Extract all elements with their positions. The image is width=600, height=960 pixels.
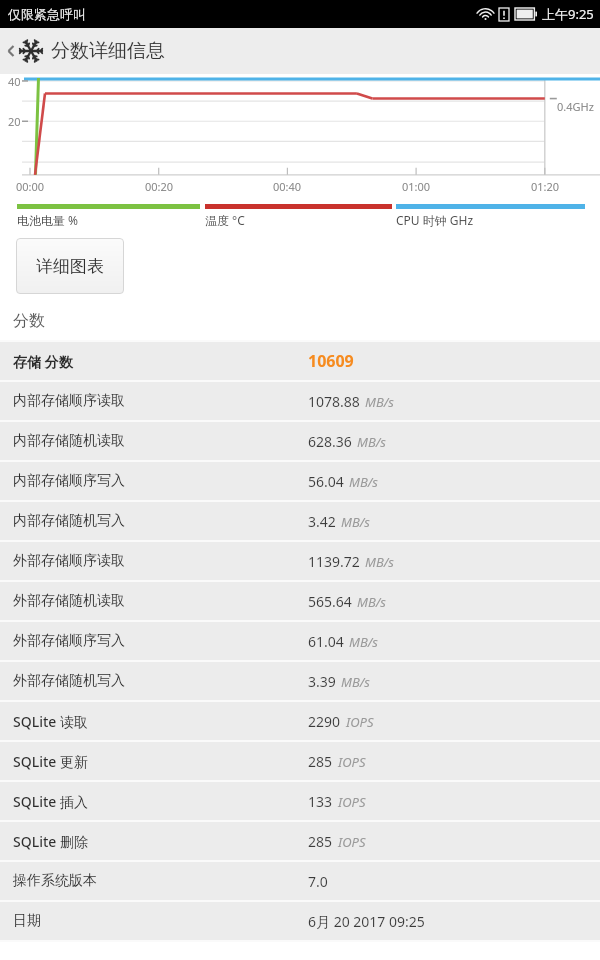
staticText: 61.04: [308, 632, 344, 651]
staticText: 1078.88: [308, 392, 360, 411]
staticText: MB/s: [349, 633, 378, 651]
button[interactable]: 外部存储顺序读取: [0, 542, 600, 580]
staticText: MB/s: [341, 513, 370, 531]
button[interactable]: 外部存储随机读取: [0, 582, 600, 620]
staticText: 分数: [13, 311, 45, 331]
button[interactable]: SQLite 插入: [0, 782, 600, 820]
staticText: 外部存储随机写入: [13, 672, 308, 690]
button[interactable]: SQLite 更新: [0, 742, 600, 780]
button[interactable]: 内部存储顺序写入: [0, 462, 600, 500]
staticText: 56.04: [308, 472, 344, 491]
staticText: 00:20: [141, 179, 177, 194]
staticText: 详细图表: [36, 256, 104, 277]
staticText: IOPS: [338, 833, 366, 851]
staticText: CPU 时钟 GHz: [396, 212, 474, 228]
button[interactable]: 存储 分数: [0, 342, 600, 380]
staticText: 外部存储顺序写入: [13, 632, 308, 650]
staticText: 01:20: [527, 179, 563, 194]
staticText: 外部存储随机读取: [13, 592, 308, 610]
staticText: 存储 分数: [13, 352, 308, 371]
staticText: MB/s: [357, 433, 386, 451]
staticText: 6月 20 2017 09:25: [308, 912, 425, 931]
staticText: SQLite 读取: [13, 712, 308, 731]
button[interactable]: 操作系统版本: [0, 862, 600, 900]
staticText: 285: [308, 832, 333, 851]
staticText: 40: [8, 74, 21, 89]
staticText: 操作系统版本: [13, 872, 308, 890]
button[interactable]: 日期: [0, 902, 600, 940]
staticText: 2290: [308, 712, 341, 731]
staticText: 日期: [13, 912, 308, 930]
staticText: 20: [8, 114, 21, 129]
staticText: 7.0: [308, 872, 328, 891]
button[interactable]: Back: [6, 39, 165, 63]
button[interactable]: SQLite 删除: [0, 822, 600, 860]
staticText: 628.36: [308, 432, 352, 451]
staticText: MB/s: [365, 553, 394, 571]
staticText: 内部存储顺序读取: [13, 392, 308, 410]
staticText: MB/s: [365, 393, 394, 411]
staticText: 285: [308, 752, 333, 771]
staticText: MB/s: [357, 593, 386, 611]
staticText: 1139.72: [308, 552, 360, 571]
staticText: 仅限紧急呼叫: [8, 6, 86, 22]
staticText: MB/s: [349, 473, 378, 491]
staticText: 00:00: [12, 179, 48, 194]
staticText: 01:00: [398, 179, 434, 194]
button[interactable]: SQLite 读取: [0, 702, 600, 740]
staticText: SQLite 插入: [13, 792, 308, 811]
staticText: 外部存储顺序读取: [13, 552, 308, 570]
staticText: 3.42: [308, 512, 336, 531]
staticText: IOPS: [338, 753, 366, 771]
staticText: 温度 °C: [205, 212, 245, 228]
staticText: SQLite 删除: [13, 832, 308, 851]
staticText: IOPS: [338, 793, 366, 811]
button[interactable]: 外部存储顺序写入: [0, 622, 600, 660]
button[interactable]: 内部存储随机读取: [0, 422, 600, 460]
staticText: MB/s: [341, 673, 370, 691]
staticText: 00:40: [269, 179, 305, 194]
staticText: 10609: [308, 350, 354, 372]
button[interactable]: 内部存储随机写入: [0, 502, 600, 540]
button[interactable]: 详细图表: [16, 238, 124, 294]
staticText: 0.4GHz: [557, 99, 594, 114]
staticText: 内部存储随机读取: [13, 432, 308, 450]
staticText: 上午9:25: [542, 5, 594, 23]
staticText: 内部存储随机写入: [13, 512, 308, 530]
staticText: 565.64: [308, 592, 352, 611]
staticText: IOPS: [346, 713, 374, 731]
staticText: 133: [308, 792, 333, 811]
staticText: 分数详细信息: [51, 39, 165, 63]
staticText: 电池电量 %: [17, 212, 79, 228]
staticText: SQLite 更新: [13, 752, 308, 771]
staticText: 3.39: [308, 672, 336, 691]
button[interactable]: 内部存储顺序读取: [0, 382, 600, 420]
button[interactable]: 外部存储随机写入: [0, 662, 600, 700]
staticText: 内部存储顺序写入: [13, 472, 308, 490]
